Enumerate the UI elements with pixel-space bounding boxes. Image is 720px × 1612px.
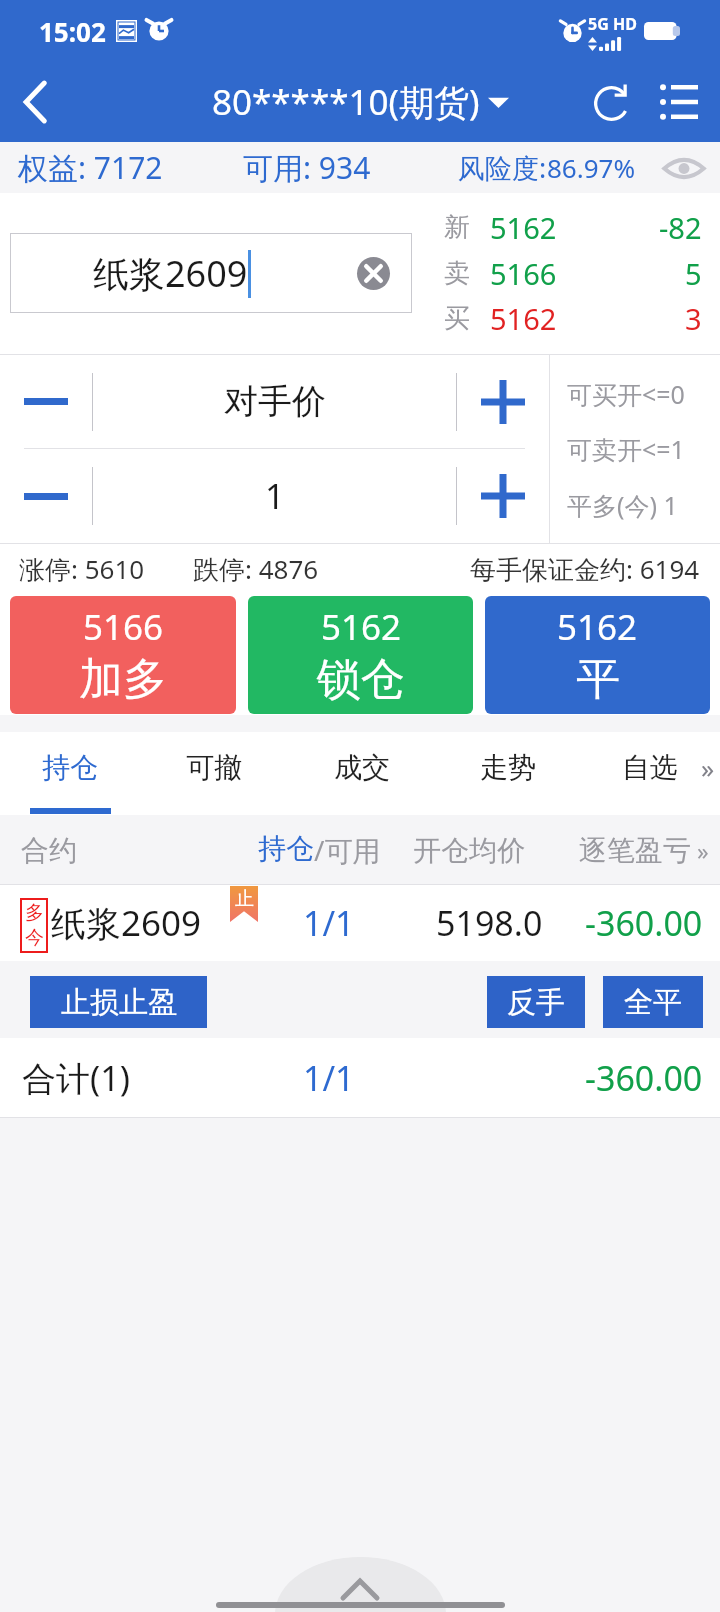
- staticText: 5162: [490, 208, 557, 247]
- button[interactable]: Refresh: [578, 62, 644, 142]
- button[interactable]: Decrease: [0, 449, 92, 543]
- staticText: 5G HD: [588, 13, 637, 35]
- staticText: 成交: [334, 750, 390, 785]
- button[interactable]: 走势: [453, 732, 563, 815]
- staticText: 5162: [557, 603, 638, 651]
- staticText: 权益: 7172: [18, 147, 163, 188]
- staticText: 止: [235, 887, 254, 911]
- button[interactable]: Decrease: [0, 355, 92, 448]
- button[interactable]: 5162: [485, 596, 710, 714]
- button[interactable]: 成交: [307, 732, 417, 815]
- staticText: 新: [444, 211, 470, 244]
- staticText: 全平: [624, 984, 682, 1021]
- staticText: -360.00: [585, 900, 703, 946]
- staticText: 1/1: [303, 900, 355, 946]
- staticText: 逐笔盈亏: [579, 833, 691, 868]
- staticText: 止损止盈: [61, 984, 177, 1021]
- staticText: 涨停: 5610: [19, 551, 145, 587]
- button[interactable]: Menu: [644, 62, 714, 142]
- button[interactable]: 止损止盈: [30, 976, 207, 1028]
- button[interactable]: 纸浆2609: [10, 233, 412, 313]
- button[interactable]: Back: [0, 62, 72, 142]
- staticText: 持仓: [258, 831, 314, 866]
- button[interactable]: 80*****10(期货): [212, 78, 509, 126]
- staticText: 可撤: [186, 750, 242, 785]
- staticText: 可用: 934: [243, 147, 371, 188]
- staticText: 5198.0: [436, 900, 543, 946]
- staticText: 加多: [79, 652, 167, 707]
- staticText: -360.00: [585, 1055, 703, 1101]
- staticText: »: [701, 750, 715, 785]
- button[interactable]: Clear: [334, 233, 412, 313]
- staticText: 锁仓: [317, 652, 405, 707]
- button[interactable]: 5166: [10, 596, 236, 714]
- button[interactable]: Toggle visibility: [662, 146, 706, 190]
- staticText: 3: [685, 299, 702, 338]
- staticText: 跌停: 4876: [193, 551, 319, 587]
- button[interactable]: 持仓: [15, 732, 125, 815]
- staticText: 5166: [490, 254, 557, 293]
- staticText: 持仓: [42, 750, 98, 785]
- staticText: 纸浆2609: [93, 249, 248, 298]
- staticText: 今: [25, 926, 44, 950]
- staticText: 开仓均价: [413, 833, 525, 868]
- staticText: 5162: [490, 299, 557, 338]
- staticText: 15:02: [39, 14, 106, 49]
- staticText: 每手保证金约: 6194: [470, 551, 700, 587]
- staticText: 反手: [507, 984, 565, 1021]
- staticText: 平: [576, 652, 620, 707]
- staticText: 可买开<=0: [567, 377, 685, 411]
- staticText: 合计(1): [22, 1055, 130, 1101]
- button[interactable]: Increase: [457, 449, 549, 543]
- staticText: »: [697, 835, 709, 866]
- staticText: 可卖开<=1: [567, 432, 685, 466]
- staticText: 86.97%: [547, 150, 636, 185]
- button[interactable]: 自选: [595, 732, 705, 815]
- button[interactable]: 可撤: [159, 732, 269, 815]
- staticText: 自选: [622, 750, 678, 785]
- staticText: 80*****10(期货): [212, 78, 480, 126]
- staticText: 1: [265, 473, 285, 519]
- button[interactable]: Increase: [457, 355, 549, 448]
- staticText: /可用: [314, 831, 381, 869]
- staticText: 1/1: [303, 1055, 355, 1101]
- staticText: -82: [659, 208, 702, 247]
- button[interactable]: 反手: [487, 976, 585, 1028]
- staticText: 5166: [83, 603, 164, 651]
- staticText: 5: [685, 254, 702, 293]
- staticText: 对手价: [224, 380, 326, 423]
- staticText: 卖: [444, 257, 470, 290]
- staticText: 走势: [480, 750, 536, 785]
- staticText: 纸浆2609: [51, 899, 202, 947]
- button[interactable]: 5162: [248, 596, 473, 714]
- staticText: 合约: [21, 833, 77, 868]
- staticText: 买: [444, 302, 470, 335]
- staticText: 平多(今) 1: [567, 488, 678, 522]
- staticText: 多: [25, 901, 44, 925]
- button[interactable]: More tabs: [696, 732, 720, 815]
- staticText: 风险度:: [458, 149, 547, 186]
- button[interactable]: 全平: [603, 976, 703, 1028]
- staticText: 5162: [321, 603, 402, 651]
